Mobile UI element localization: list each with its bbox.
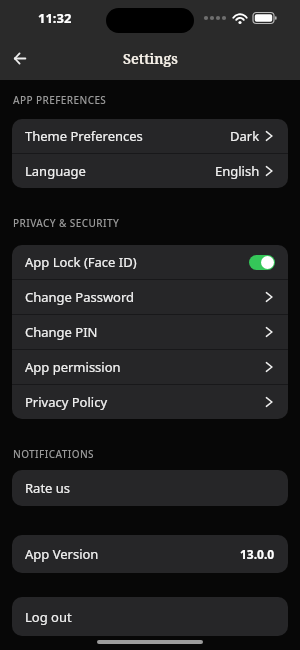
staticText: PRIVACY & SECURITY [13,216,120,230]
button[interactable] [6,44,34,72]
button[interactable]: App permission [12,350,288,384]
button[interactable]: Log out [12,597,288,636]
staticText: Rate us [25,479,71,497]
staticText: 13.0.0 [240,546,275,562]
staticText: Change Password [25,288,135,306]
staticText: APP PREFERENCES [13,93,107,107]
staticText: Settings [123,49,178,68]
staticText: Change PIN [25,323,98,341]
staticText: App permission [25,358,121,376]
button[interactable]: Change Password [12,280,288,314]
button[interactable]: Language [12,154,288,188]
staticText: 11:32 [38,9,72,27]
staticText: Language [25,162,86,180]
button[interactable]: Rate us [12,470,288,506]
button[interactable]: Change PIN [12,315,288,349]
staticText: App Lock (Face ID) [25,253,137,271]
staticText: English [215,162,260,180]
staticText: Privacy Policy [25,393,108,411]
staticText: Log out [25,608,72,626]
button[interactable]: App Version [12,535,288,573]
staticText: App Version [25,545,99,563]
button[interactable]: Privacy Policy [12,385,288,419]
button[interactable]: App Lock (Face ID) [12,245,288,279]
staticText: Theme Preferences [25,127,143,145]
staticText: Dark [230,127,260,145]
button[interactable]: Theme Preferences [12,119,288,153]
staticText: NOTIFICATIONS [13,447,94,461]
button[interactable] [249,255,275,270]
